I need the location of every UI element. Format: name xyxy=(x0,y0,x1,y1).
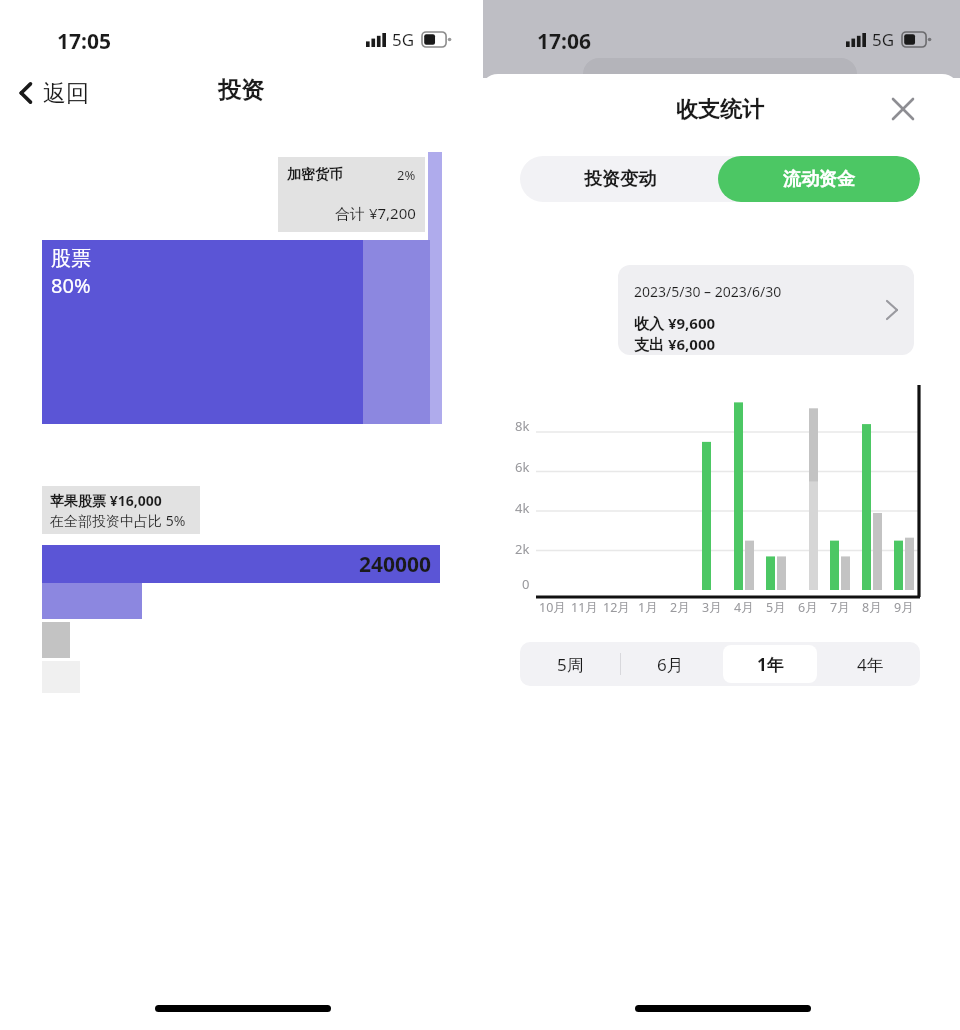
staticText: 8k xyxy=(515,417,530,435)
button[interactable]: 返回 xyxy=(14,73,93,113)
staticText: 苹果股票 ¥16,000 xyxy=(50,491,162,510)
staticText: 加密货币 xyxy=(287,166,343,184)
staticText: 7月 xyxy=(830,599,850,616)
staticText: 流动资金 xyxy=(783,168,855,191)
staticText: 17:05 xyxy=(57,27,111,56)
button[interactable]: 流动资金 xyxy=(718,156,920,202)
button[interactable]: 6月 xyxy=(623,645,717,683)
staticText: 收入 ¥9,600 xyxy=(634,313,716,333)
staticText: 4年 xyxy=(857,653,884,676)
staticText: 10月 xyxy=(539,599,566,616)
staticText: 投资变动 xyxy=(584,168,656,191)
staticText: 在全部投资中占比 5% xyxy=(50,511,186,530)
staticText: 12月 xyxy=(603,599,630,616)
staticText: 80% xyxy=(51,272,91,299)
staticText: 合计 ¥7,200 xyxy=(335,203,416,223)
staticText: 4k xyxy=(515,499,530,517)
button[interactable]: 4年 xyxy=(823,645,917,683)
staticText: 5G xyxy=(392,28,415,51)
button[interactable]: 苹果股票 ¥16,000 xyxy=(42,486,200,534)
button[interactable]: 1年 xyxy=(723,645,817,683)
button[interactable]: 240000 xyxy=(42,545,440,583)
staticText: 1年 xyxy=(757,653,784,676)
staticText: 2k xyxy=(515,540,530,558)
button[interactable]: 股票 xyxy=(42,240,363,424)
staticText: 2% xyxy=(397,166,416,184)
button[interactable]: Close xyxy=(882,88,924,130)
staticText: 8月 xyxy=(862,599,882,616)
staticText: 2月 xyxy=(670,599,690,616)
staticText: 投资 xyxy=(218,76,264,105)
staticText: 6月 xyxy=(798,599,818,616)
staticText: 240000 xyxy=(359,550,432,579)
staticText: 返回 xyxy=(43,79,89,108)
staticText: 收支统计 xyxy=(676,96,764,124)
staticText: 11月 xyxy=(571,599,598,616)
staticText: 2023/5/30 – 2023/6/30 xyxy=(634,282,782,301)
staticText: 9月 xyxy=(894,599,914,616)
button[interactable]: 加密货币 xyxy=(278,157,425,232)
staticText: 3月 xyxy=(702,599,722,616)
staticText: 17:06 xyxy=(537,27,591,56)
staticText: 4月 xyxy=(734,599,754,616)
button[interactable]: 投资变动 xyxy=(520,156,720,202)
staticText: 5月 xyxy=(766,599,786,616)
button[interactable]: 5周 xyxy=(523,645,617,683)
button[interactable]: 2023/5/30 – 2023/6/30 xyxy=(618,265,914,355)
staticText: 1月 xyxy=(638,599,658,616)
staticText: 5周 xyxy=(557,653,584,676)
staticText: 0 xyxy=(522,575,530,593)
staticText: 6月 xyxy=(657,653,684,676)
staticText: 支出 ¥6,000 xyxy=(634,334,716,354)
staticText: 股票 xyxy=(51,246,91,271)
staticText: 6k xyxy=(515,458,530,476)
staticText: 5G xyxy=(872,28,895,51)
